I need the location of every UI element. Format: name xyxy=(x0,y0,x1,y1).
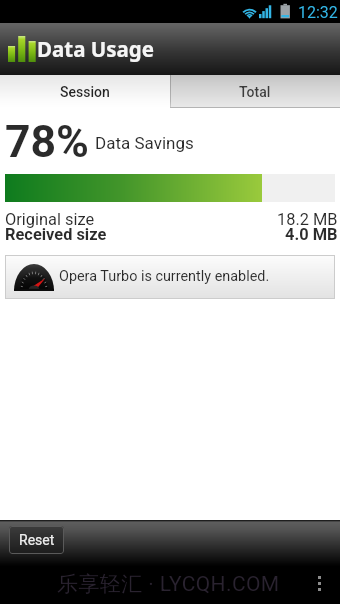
staticText: Reset xyxy=(19,532,55,548)
staticText: 78% xyxy=(5,116,89,168)
staticText: 4.0 MB xyxy=(285,225,338,244)
staticText: Original size xyxy=(5,210,95,229)
button[interactable]: Reset xyxy=(9,526,64,554)
button[interactable]: Opera Turbo is currently enabled. xyxy=(5,255,335,299)
staticText: 12:32 xyxy=(298,3,338,22)
staticText: 18.2 MB xyxy=(277,210,338,229)
staticText: Received size xyxy=(5,225,107,244)
button[interactable]: Total xyxy=(170,75,340,108)
staticText: Total xyxy=(239,84,271,100)
staticText: Data Usage xyxy=(37,35,155,63)
button[interactable]: Session xyxy=(0,75,170,108)
staticText: Opera Turbo is currently enabled. xyxy=(59,268,270,285)
staticText: 乐享轻汇 · LYCQH.COM xyxy=(57,571,280,597)
staticText: Session xyxy=(60,84,110,100)
button[interactable]: More options xyxy=(298,562,340,604)
staticText: Data Savings xyxy=(95,133,194,153)
